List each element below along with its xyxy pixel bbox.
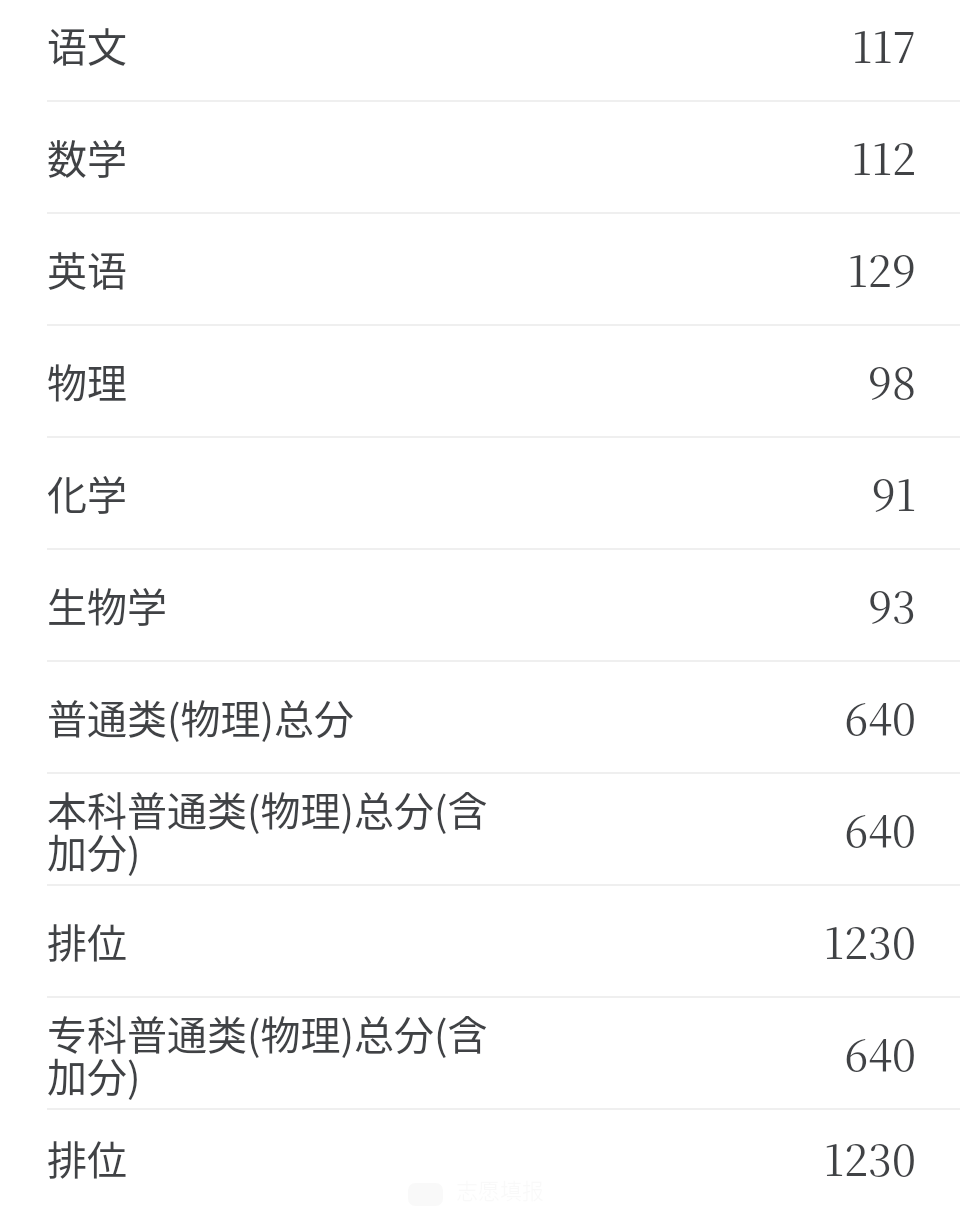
button[interactable]: 生物学 — [0, 550, 960, 660]
staticText: 物理 — [47, 352, 127, 410]
staticText: 640 — [844, 1022, 916, 1084]
staticText: 640 — [844, 798, 916, 860]
staticText: 129 — [847, 238, 916, 300]
staticText: 1230 — [823, 1127, 916, 1189]
staticText: 93 — [867, 574, 916, 636]
button[interactable]: 数学 — [0, 102, 960, 212]
staticText: 98 — [867, 350, 916, 412]
staticText: 生物学 — [47, 576, 167, 634]
button[interactable]: 排位 — [0, 886, 960, 996]
button[interactable]: 普通类(物理)总分 — [0, 662, 960, 772]
button[interactable]: 英语 — [0, 214, 960, 324]
staticText: 112 — [851, 126, 916, 188]
button[interactable]: 化学 — [0, 438, 960, 548]
staticText: 数学 — [47, 128, 127, 186]
staticText: 专科普通类(物理)总分(含加分) — [47, 1004, 517, 1103]
staticText: 本科普通类(物理)总分(含加分) — [47, 780, 517, 879]
button[interactable]: 排位 — [0, 1110, 960, 1206]
staticText: 117 — [851, 14, 916, 76]
staticText: 91 — [871, 462, 916, 524]
button[interactable]: 物理 — [0, 326, 960, 436]
button[interactable]: 专科普通类(物理)总分(含加分) — [0, 998, 960, 1108]
staticText: 1230 — [823, 910, 916, 972]
button[interactable]: 本科普通类(物理)总分(含加分) — [0, 774, 960, 884]
staticText: 语文 — [47, 16, 127, 74]
staticText: 普通类(物理)总分 — [47, 688, 355, 746]
staticText: 化学 — [47, 464, 127, 522]
staticText: 640 — [844, 686, 916, 748]
staticText: 排位 — [47, 1129, 127, 1187]
staticText: 排位 — [47, 912, 127, 970]
staticText: 英语 — [47, 240, 127, 298]
button[interactable]: 语文 — [0, 0, 960, 100]
